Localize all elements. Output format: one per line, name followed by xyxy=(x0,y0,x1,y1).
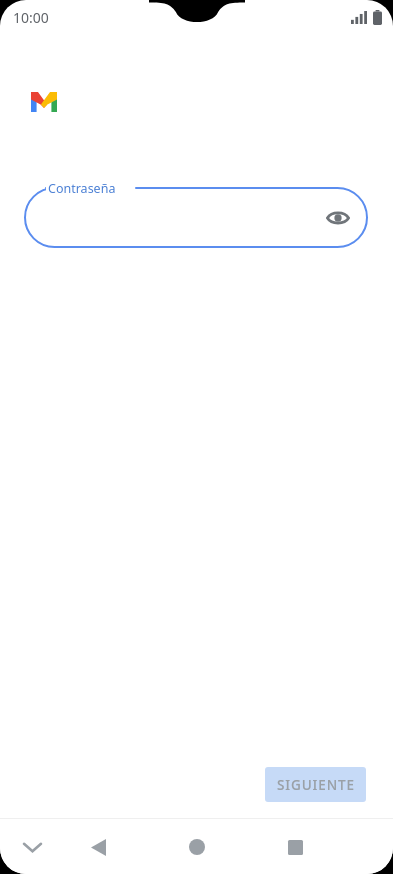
button[interactable]: Mostrar contraseña xyxy=(24,187,368,248)
button[interactable]: Recientes xyxy=(273,825,317,869)
staticText: SIGUIENTE xyxy=(277,776,355,794)
button[interactable]: Atrás xyxy=(76,825,120,869)
button[interactable]: Ocultar teclado xyxy=(10,825,54,869)
button[interactable]: Inicio xyxy=(175,825,219,869)
staticText: Contraseña xyxy=(48,180,116,197)
staticText: 10:00 xyxy=(13,8,49,27)
button[interactable]: Mostrar contraseña xyxy=(318,198,358,238)
button[interactable]: SIGUIENTE xyxy=(265,767,366,802)
